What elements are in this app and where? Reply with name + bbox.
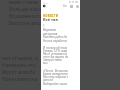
staticText: Вкусвилл [43,28,57,32]
staticText: Мы ему собрали всё про [43,75,68,79]
staticText: Но как заработать [43,39,67,43]
staticText: Aa [63,4,67,8]
staticText: вная ставка [9,0,39,6]
button[interactable]: Back [41,3,47,9]
staticText: Могут в любо [2,69,36,76]
staticText: Более интересно и это [43,72,68,76]
button[interactable]: Share [74,3,80,9]
button[interactable]: Bookmark [68,3,74,9]
staticText: Всё так [43,17,58,22]
staticText: НОВОСТИ [43,14,59,18]
staticText: Копейка рубль бережёт и [43,35,67,39]
staticText: деньги [43,78,67,82]
staticText: Больше насл [9,6,42,13]
staticText: Выбирайте сами: деньги [43,82,68,86]
staticText: нет отзывов, н [2,55,38,62]
staticText: Мы в условиях кризиса [43,52,67,56]
staticText: 9:41 [43,1,48,4]
staticText: рассрочка [43,32,58,36]
staticText: мы [43,61,67,65]
staticText: Завтра снова [43,58,67,62]
staticText: 1 [43,24,47,28]
staticText: Быстрое реш [9,20,42,27]
staticText: Теперь 12 % годовых [43,49,67,53]
staticText: Напишем что [2,62,36,69]
staticText: Начисляем на [2,76,38,83]
staticText: «Почти. Вспомнили. Всё» [43,69,68,73]
staticText: этот год ждали нас здесь [43,55,68,59]
staticText: И только об этом [43,46,67,50]
button[interactable]: Text size [62,3,68,9]
staticText: Возможность [9,13,43,20]
